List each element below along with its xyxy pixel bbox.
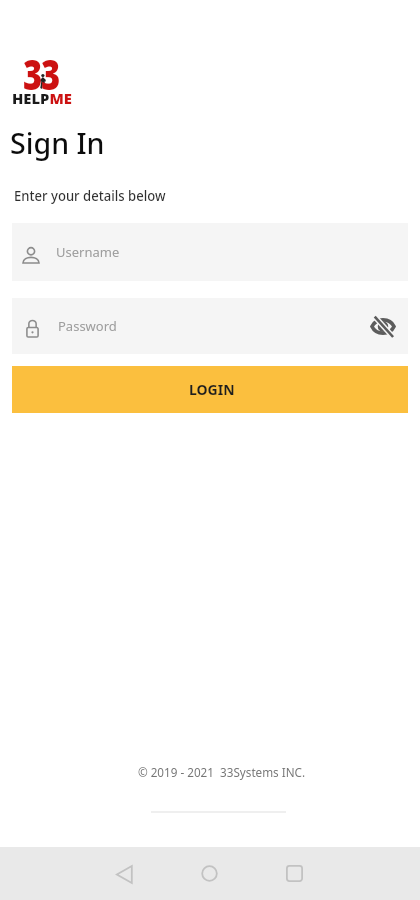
button[interactable]: Password [12,298,408,354]
staticText: © 2019 - 2021 33Systems INC. [23,764,420,780]
button[interactable]: Recents [272,849,320,897]
staticText: Sign In [10,123,105,162]
staticText: LOGIN [189,380,235,399]
staticText: Password [58,317,365,335]
staticText: Username [56,243,120,261]
button[interactable]: Username [12,223,408,281]
staticText: Enter your details below [14,187,166,205]
button[interactable]: Show password [365,311,395,341]
button[interactable]: Home [186,849,234,897]
button[interactable]: LOGIN [12,366,408,413]
button[interactable]: Back [100,849,148,897]
staticText: 33 [23,44,59,102]
staticText: HELPME [12,90,72,108]
